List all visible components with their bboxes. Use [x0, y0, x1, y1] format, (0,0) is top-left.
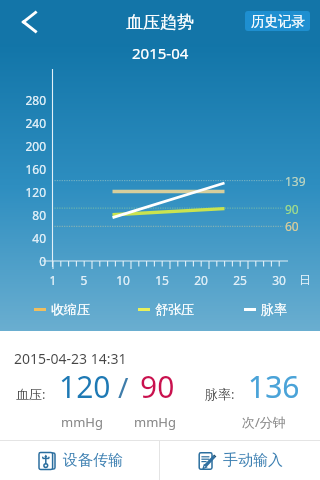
- staticText: 5: [72, 272, 96, 288]
- staticText: 收缩压: [51, 301, 90, 317]
- button[interactable]: Device transfer: [0, 441, 159, 480]
- staticText: 0: [14, 253, 46, 269]
- staticText: 脉率:: [205, 385, 235, 403]
- staticText: mmHg: [134, 413, 176, 431]
- staticText: 280: [14, 92, 46, 108]
- staticText: 160: [14, 161, 46, 177]
- staticText: 30: [267, 272, 291, 288]
- staticText: 1: [41, 272, 65, 288]
- staticText: 设备传输: [63, 451, 123, 470]
- staticText: 90: [140, 366, 175, 407]
- staticText: 手动输入: [223, 451, 283, 470]
- staticText: 次/分钟: [242, 413, 286, 431]
- staticText: 脉率: [261, 301, 287, 317]
- other: Device transfer: [37, 451, 57, 471]
- staticText: 血压趋势: [126, 12, 194, 33]
- staticText: 10: [111, 272, 135, 288]
- staticText: 136: [248, 366, 300, 407]
- button[interactable]: Manual input: [160, 441, 320, 480]
- button[interactable]: Back: [9, 2, 49, 42]
- staticText: /: [118, 368, 129, 406]
- staticText: 90: [285, 201, 315, 217]
- staticText: 15: [150, 272, 174, 288]
- staticText: 日: [299, 272, 311, 287]
- staticText: 120: [59, 366, 111, 407]
- staticText: mmHg: [61, 413, 103, 431]
- staticText: 历史记录: [251, 13, 305, 30]
- staticText: 120: [14, 184, 46, 200]
- staticText: 80: [14, 207, 46, 223]
- staticText: 240: [14, 115, 46, 131]
- staticText: 25: [228, 272, 252, 288]
- staticText: 2015-04: [132, 43, 189, 63]
- button[interactable]: 历史记录: [245, 11, 310, 31]
- staticText: 2015-04-23 14:31: [14, 349, 127, 368]
- staticText: 舒张压: [155, 301, 194, 317]
- staticText: 139: [285, 173, 315, 189]
- staticText: 20: [189, 272, 213, 288]
- staticText: 200: [14, 138, 46, 154]
- other: Manual input: [197, 451, 217, 471]
- staticText: 60: [285, 218, 315, 234]
- staticText: 血压:: [16, 385, 46, 403]
- staticText: 40: [14, 230, 46, 246]
